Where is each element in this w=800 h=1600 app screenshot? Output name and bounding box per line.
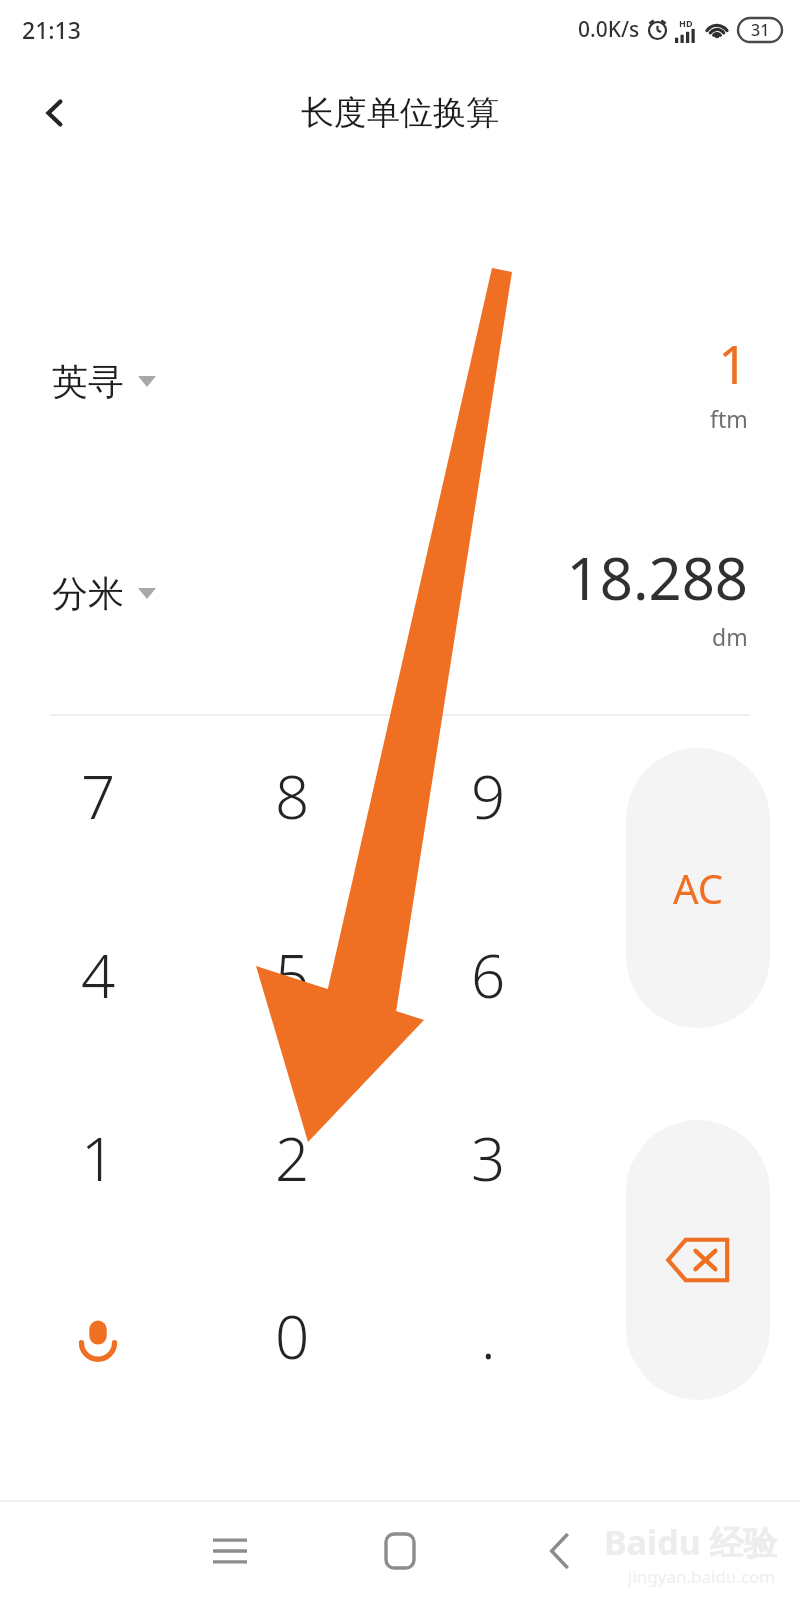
button[interactable]: . — [390, 1247, 586, 1425]
staticText: 1 — [81, 1117, 116, 1199]
staticText: 2 — [275, 1117, 310, 1199]
staticText: 0.0K/s — [578, 15, 640, 44]
button[interactable]: 9 — [390, 707, 586, 885]
staticText: 6 — [471, 934, 506, 1016]
button[interactable]: 英寻 — [52, 359, 156, 404]
button[interactable]: Backspace — [626, 1120, 770, 1400]
button[interactable]: 4 — [0, 886, 196, 1064]
staticText: . — [481, 1295, 496, 1377]
button[interactable]: Recent apps — [175, 1502, 285, 1600]
button[interactable]: 6 — [390, 886, 586, 1064]
staticText: 长度单位换算 — [301, 92, 499, 134]
staticText: ftm — [710, 403, 748, 434]
button[interactable]: 3 — [390, 1069, 586, 1247]
staticText: 21:13 — [22, 14, 81, 45]
button[interactable]: Voice input — [0, 1250, 196, 1428]
staticText: dm — [712, 621, 748, 648]
staticText: 31 — [751, 19, 770, 41]
staticText: 5 — [275, 934, 310, 1016]
staticText: 1 — [718, 328, 748, 399]
staticText: 7 — [81, 755, 116, 837]
staticText: 18.288 — [566, 538, 748, 617]
staticText: 0 — [275, 1295, 310, 1377]
button[interactable]: 1 — [0, 1069, 196, 1247]
button[interactable]: Back — [505, 1502, 615, 1600]
staticText: Baidu 经验 — [604, 1519, 778, 1565]
staticText: 3 — [471, 1117, 506, 1199]
button[interactable]: 2 — [194, 1069, 390, 1247]
button[interactable]: 0 — [194, 1247, 390, 1425]
staticText: AC — [673, 861, 724, 915]
button[interactable]: 7 — [0, 707, 196, 885]
staticText: HD — [679, 17, 693, 29]
staticText: 分米 — [52, 571, 124, 616]
button[interactable]: 8 — [194, 707, 390, 885]
button[interactable]: 5 — [194, 886, 390, 1064]
staticText: 英寻 — [52, 359, 124, 404]
button[interactable]: Back — [20, 78, 90, 148]
staticText: jingyan.baidu.com — [628, 1565, 776, 1588]
staticText: 8 — [275, 755, 310, 837]
staticText: 4 — [81, 934, 116, 1016]
button[interactable]: All clear — [626, 748, 770, 1028]
button[interactable]: Home — [345, 1502, 455, 1600]
button[interactable]: 分米 — [52, 571, 156, 616]
staticText: 9 — [471, 755, 506, 837]
